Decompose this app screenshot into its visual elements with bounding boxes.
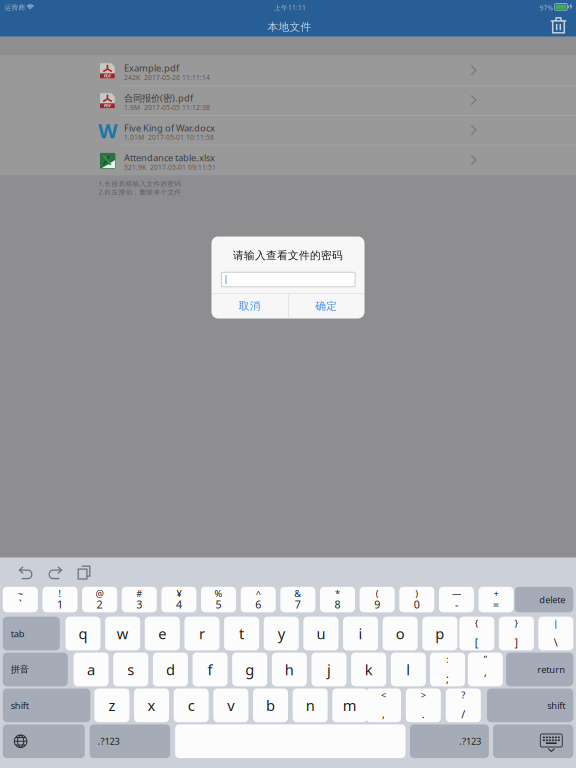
staticText: [ — [475, 635, 479, 649]
button[interactable]: Redo — [47, 566, 62, 579]
staticText: PDF — [104, 103, 111, 108]
button[interactable]: e — [145, 617, 180, 650]
button[interactable]: c — [174, 688, 209, 722]
button[interactable]: ( — [360, 587, 395, 612]
staticText: 7 — [295, 597, 301, 611]
button[interactable]: Hide keyboard — [493, 724, 573, 758]
staticText: ’ — [484, 671, 486, 685]
button[interactable]: W — [0, 115, 576, 145]
button[interactable]: n — [293, 688, 328, 722]
staticText: % — [215, 587, 223, 599]
staticText: @ — [96, 587, 104, 599]
staticText: 242K 2017-05-26 11:11:14 — [124, 73, 210, 82]
button[interactable]: w — [105, 617, 140, 650]
button[interactable]: & — [280, 587, 315, 612]
button[interactable]: j — [311, 653, 346, 686]
button[interactable]: shift — [487, 688, 573, 722]
button[interactable]: z — [94, 688, 129, 722]
button[interactable]: < — [366, 688, 401, 722]
button[interactable]: u — [303, 617, 338, 650]
staticText: 5 — [216, 597, 222, 611]
staticText: c — [188, 696, 195, 715]
button[interactable]: ? — [446, 688, 481, 722]
button[interactable]: s — [113, 653, 148, 686]
button[interactable]: t — [224, 617, 259, 650]
staticText: n — [306, 696, 315, 715]
staticText: W — [98, 117, 117, 144]
staticText: 1.01M 2017-05-01 10:11:58 — [124, 133, 214, 142]
button[interactable]: y — [264, 617, 299, 650]
staticText: ~ — [18, 587, 23, 599]
staticText: h — [285, 660, 294, 679]
button[interactable]: 取消 — [211, 293, 288, 318]
button[interactable]: ¥ — [161, 587, 196, 612]
button[interactable]: a — [74, 653, 109, 686]
button[interactable]: # — [122, 587, 157, 612]
button[interactable]: Space — [175, 724, 405, 758]
button[interactable]: l — [391, 653, 426, 686]
button[interactable]: p — [422, 617, 457, 650]
button[interactable]: tab — [3, 617, 60, 650]
button[interactable]: ^ — [241, 587, 276, 612]
button[interactable]: f — [192, 653, 227, 686]
button[interactable]: i — [343, 617, 378, 650]
button[interactable]: 确定 — [288, 293, 364, 318]
staticText: 521.9K 2017-05-01 09:11:51 — [124, 163, 216, 172]
staticText: ) — [415, 587, 418, 599]
button[interactable]: : — [430, 653, 465, 686]
button[interactable]: % — [201, 587, 236, 612]
button[interactable]: — — [439, 587, 474, 612]
button[interactable]: ~ — [3, 587, 38, 612]
button[interactable]: Paste — [77, 565, 90, 580]
button[interactable]: ” — [468, 653, 503, 686]
staticText: # — [136, 587, 142, 599]
button[interactable]: + — [479, 587, 514, 612]
button[interactable]: q — [65, 617, 100, 650]
button[interactable]: .?123 — [410, 724, 489, 758]
staticText: ? — [461, 689, 465, 701]
button[interactable]: h — [272, 653, 307, 686]
button[interactable]: ) — [399, 587, 434, 612]
button[interactable]: @ — [82, 587, 117, 612]
button[interactable]: return — [506, 653, 573, 686]
staticText: 本地文件 — [267, 20, 311, 34]
button[interactable]: r — [184, 617, 219, 650]
button[interactable]: { — [459, 617, 494, 650]
staticText: o — [396, 624, 405, 643]
button[interactable]: o — [383, 617, 418, 650]
staticText: \ — [554, 635, 558, 649]
button[interactable]: > — [406, 688, 441, 722]
staticText: v — [227, 696, 234, 715]
staticText: + — [494, 587, 499, 599]
staticText: 运营商 — [4, 3, 25, 12]
button[interactable]: v — [213, 688, 248, 722]
button[interactable]: ! — [42, 587, 77, 612]
staticText: shift — [547, 699, 565, 712]
button[interactable]: Delete files — [550, 16, 567, 34]
button[interactable]: Next keyboard — [3, 724, 85, 758]
staticText: g — [245, 660, 254, 679]
button[interactable]: Attendance table.xlsx — [0, 145, 576, 175]
staticText: 0 — [414, 597, 420, 611]
button[interactable]: | — [538, 617, 573, 650]
button[interactable]: shift — [3, 688, 90, 722]
staticText: j — [327, 660, 331, 679]
staticText: ( — [376, 587, 379, 599]
button[interactable]: b — [253, 688, 288, 722]
button[interactable]: x — [134, 688, 169, 722]
button[interactable]: Undo — [18, 566, 33, 579]
button[interactable]: PDF — [0, 55, 576, 85]
button[interactable]: k — [351, 653, 386, 686]
staticText: = — [493, 597, 499, 611]
button[interactable]: PDF — [0, 85, 576, 115]
button[interactable]: g — [232, 653, 267, 686]
button[interactable]: 拼音 — [3, 653, 68, 686]
button[interactable]: m — [332, 688, 367, 722]
button[interactable]: d — [153, 653, 188, 686]
button[interactable]: .?123 — [90, 724, 170, 758]
button[interactable]: * — [320, 587, 355, 612]
button[interactable]: delete — [515, 587, 573, 612]
staticText: .?123 — [98, 735, 120, 747]
button[interactable]: } — [499, 617, 534, 650]
staticText: z — [108, 696, 115, 715]
